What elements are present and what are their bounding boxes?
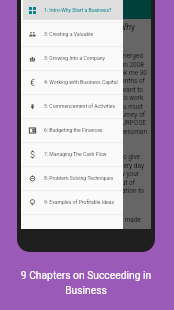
staticText: follow your — [21, 170, 139, 178]
staticText: and how to work. — [21, 94, 145, 102]
staticText: hat you if made — [21, 216, 141, 224]
staticText: re starting you must — [21, 103, 143, 111]
staticText: The Reason Why — [21, 22, 135, 32]
staticText: $ — [30, 150, 36, 161]
staticText: ms out of — [21, 179, 135, 187]
staticText: a new idea in 2008 — [21, 61, 144, 69]
button[interactable]: € — [21, 71, 123, 95]
staticText: 9 Chapters on Succeeding in Business — [11, 269, 161, 296]
staticText: and some months of — [21, 77, 145, 85]
staticText: t your journey of — [21, 111, 145, 119]
button[interactable]: 6: Budgeting the Finances — [21, 119, 123, 143]
staticText: e sure to give — [21, 153, 140, 161]
staticText: company was emerged — [21, 52, 143, 60]
staticText: eing a businessman — [21, 128, 147, 136]
staticText: 7: Managing The Cash Flow — [44, 151, 107, 157]
staticText: 3: Creating a Valuable — [44, 31, 94, 37]
staticText: r best every day — [21, 162, 144, 170]
button[interactable]: 3: Creating a Valuable — [21, 23, 123, 47]
staticText: 4: Working with Business Capital — [44, 79, 118, 85]
staticText: ing the PURPOSE — [21, 119, 146, 127]
button[interactable]: 9: Examples of Profitable Ideas — [21, 191, 123, 215]
staticText: 1: Intro-Why Start a Business? — [44, 7, 112, 13]
button[interactable]: 8: Problem Solving Techniques — [21, 167, 123, 191]
staticText: king what I want to — [21, 86, 143, 94]
staticText: 9: Examples of Profitable Ideas — [44, 199, 115, 205]
button[interactable]: 5: Commencement of Activities — [21, 95, 123, 119]
staticText: 5: Commencement of Activities — [44, 103, 116, 109]
staticText: 3: Growing Into a Company — [44, 55, 105, 61]
button[interactable]: $ — [21, 143, 123, 167]
staticText: imagination to — [21, 187, 144, 195]
staticText: that time took me 30 — [21, 69, 147, 77]
button[interactable]: 3: Growing Into a Company — [21, 47, 123, 71]
button[interactable]: 1: Intro-Why Start a Business? — [21, 0, 123, 23]
staticText: 8: Problem Solving Techniques — [44, 175, 114, 181]
staticText: 6: Budgeting the Finances — [44, 127, 103, 133]
staticText: € — [30, 78, 36, 89]
